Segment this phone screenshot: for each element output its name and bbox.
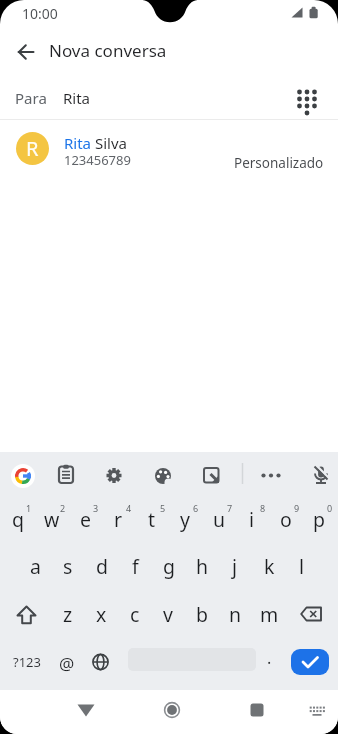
button[interactable]: n <box>219 599 251 629</box>
staticText: Rita Silva <box>64 133 127 151</box>
button[interactable] <box>154 692 190 728</box>
button[interactable]: p <box>303 504 335 534</box>
button[interactable] <box>0 124 338 180</box>
staticText: 2 <box>60 502 66 514</box>
staticText: 3 <box>93 502 99 514</box>
staticText: h <box>196 553 209 580</box>
staticText: m <box>260 601 279 628</box>
button[interactable] <box>257 461 285 489</box>
button[interactable]: b <box>186 599 218 629</box>
button[interactable]: f <box>119 551 151 581</box>
button[interactable]: u <box>203 504 235 534</box>
button[interactable]: w <box>36 504 68 534</box>
staticText: u <box>213 506 226 533</box>
button[interactable]: a <box>19 551 51 581</box>
staticText: q <box>12 506 24 533</box>
staticText: Rita <box>63 88 91 108</box>
staticText: 1 <box>26 502 32 514</box>
staticText: j <box>232 553 238 580</box>
staticText: t <box>148 506 156 533</box>
staticText: a <box>30 553 41 580</box>
staticText: 9 <box>294 502 300 514</box>
button[interactable]: t <box>136 504 168 534</box>
button[interactable] <box>291 649 329 675</box>
staticText: 4 <box>126 502 132 514</box>
staticText: 8 <box>260 502 266 514</box>
button[interactable] <box>303 694 333 724</box>
button[interactable] <box>198 461 226 489</box>
staticText: f <box>132 553 139 580</box>
button[interactable]: ?123 <box>6 651 48 673</box>
button[interactable]: d <box>86 551 118 581</box>
button[interactable] <box>12 601 41 630</box>
staticText: b <box>196 601 208 628</box>
staticText: e <box>80 506 91 533</box>
staticText: s <box>63 553 73 580</box>
staticText: 6 <box>193 502 199 514</box>
staticText: l <box>299 553 305 580</box>
staticText: @ <box>59 652 75 675</box>
button[interactable]: h <box>186 551 218 581</box>
staticText: Personalizado <box>234 154 324 170</box>
staticText: w <box>44 506 60 533</box>
staticText: R <box>26 135 39 162</box>
button[interactable]: k <box>253 551 285 581</box>
staticText: 10:00 <box>22 4 58 23</box>
staticText: ?123 <box>13 653 41 671</box>
staticText: p <box>313 506 325 533</box>
button[interactable] <box>239 692 275 728</box>
staticText: k <box>264 553 275 580</box>
button[interactable]: @ <box>52 650 82 676</box>
button[interactable] <box>86 648 115 677</box>
button[interactable]: j <box>219 551 251 581</box>
button[interactable]: z <box>52 599 84 629</box>
button[interactable]: m <box>253 599 285 629</box>
button[interactable]: g <box>153 551 185 581</box>
button[interactable] <box>12 38 40 66</box>
button[interactable]: v <box>152 599 184 629</box>
staticText: d <box>96 553 108 580</box>
staticText: 0 <box>327 502 333 514</box>
staticText: 7 <box>227 502 233 514</box>
staticText: z <box>63 601 73 628</box>
button[interactable]: i <box>236 504 268 534</box>
button[interactable] <box>291 84 323 116</box>
button[interactable] <box>149 461 177 489</box>
staticText: c <box>130 601 140 628</box>
button[interactable]: c <box>119 599 151 629</box>
button[interactable]: q <box>2 504 34 534</box>
button[interactable]: r <box>102 504 134 534</box>
staticText: Nova conversa <box>49 39 167 61</box>
staticText: Para <box>15 88 47 108</box>
button[interactable]: . <box>259 647 279 669</box>
staticText: g <box>163 553 175 580</box>
button[interactable]: x <box>85 599 117 629</box>
button[interactable] <box>11 464 35 488</box>
staticText: 123456789 <box>64 151 131 167</box>
staticText: v <box>163 601 173 628</box>
staticText: i <box>249 506 255 533</box>
button[interactable] <box>297 602 327 632</box>
staticText: 5 <box>160 502 166 514</box>
button[interactable]: s <box>52 551 84 581</box>
button[interactable]: l <box>286 551 318 581</box>
staticText: x <box>96 601 107 628</box>
button[interactable]: y <box>169 504 201 534</box>
staticText: . <box>267 647 272 669</box>
button[interactable]: e <box>69 504 101 534</box>
staticText: y <box>180 506 190 533</box>
button[interactable] <box>52 461 80 489</box>
button[interactable] <box>68 692 104 728</box>
button[interactable] <box>307 461 335 489</box>
button[interactable] <box>100 461 128 489</box>
button[interactable]: o <box>270 504 302 534</box>
staticText: r <box>114 506 123 533</box>
staticText: o <box>280 506 292 533</box>
staticText: n <box>229 601 242 628</box>
